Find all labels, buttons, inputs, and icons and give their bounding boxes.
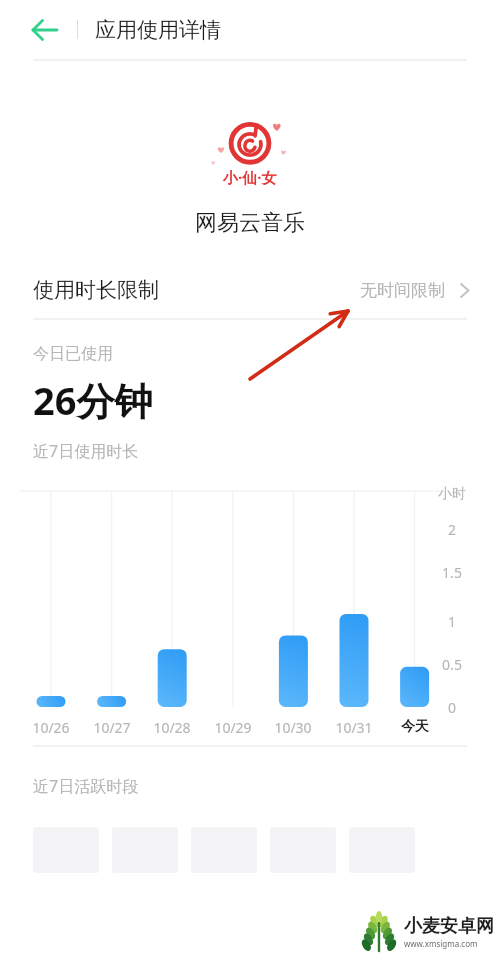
staticText: 10/26 bbox=[23, 718, 79, 737]
staticText: 网易云音乐 bbox=[195, 209, 305, 237]
staticText: 1.5 bbox=[426, 563, 478, 582]
staticText: 10/29 bbox=[205, 718, 261, 737]
staticText: 近7日活跃时段 bbox=[33, 775, 139, 797]
staticText: 10/27 bbox=[84, 718, 140, 737]
staticText: 应用使用详情 bbox=[95, 17, 221, 43]
staticText: 小·仙·女 bbox=[223, 167, 277, 187]
staticText: 0.5 bbox=[426, 655, 478, 674]
staticText: 1 bbox=[426, 612, 478, 631]
staticText: 2 bbox=[426, 520, 478, 539]
staticText: 近7日使用时长 bbox=[33, 440, 139, 462]
staticText: www.xmsigma.com bbox=[404, 938, 478, 949]
staticText: 今天 bbox=[387, 718, 443, 736]
staticText: 10/30 bbox=[265, 718, 321, 737]
button[interactable]: Back bbox=[24, 8, 68, 52]
staticText: 26分钟 bbox=[33, 374, 153, 426]
staticText: 0 bbox=[426, 698, 478, 717]
staticText: 10/28 bbox=[144, 718, 200, 737]
button[interactable]: 使用时长限制 bbox=[0, 262, 500, 318]
staticText: 10/31 bbox=[326, 718, 382, 737]
staticText: 今日已使用 bbox=[33, 344, 113, 364]
staticText: 无时间限制 bbox=[360, 280, 445, 301]
staticText: 小时 bbox=[426, 485, 478, 503]
staticText: 使用时长限制 bbox=[33, 277, 159, 303]
staticText: 小麦安卓网 bbox=[404, 915, 494, 938]
